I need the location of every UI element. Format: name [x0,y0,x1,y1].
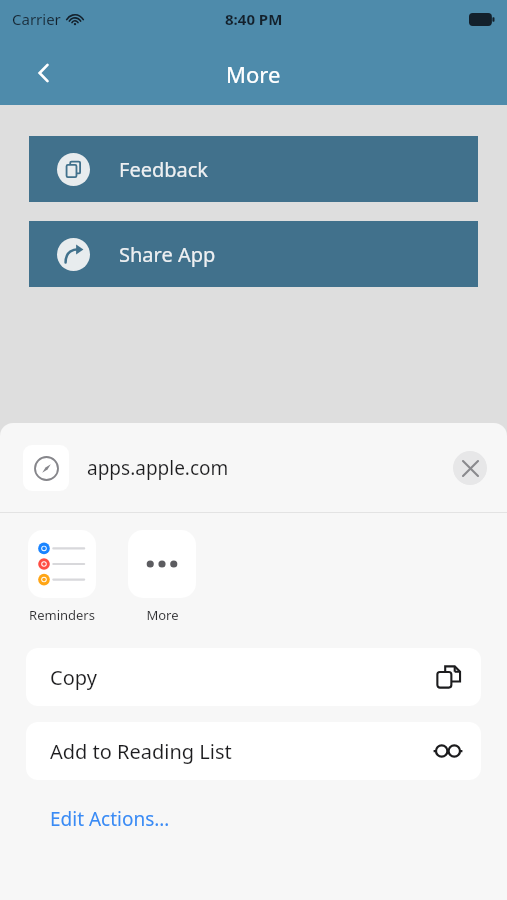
button[interactable]: Reminders [26,530,98,624]
staticText: Copy [50,664,97,691]
staticText: Feedback [119,156,209,183]
staticText: More [226,59,281,89]
staticText: Share App [119,241,216,268]
button[interactable]: More [126,530,198,624]
staticText: Carrier [12,9,61,29]
button[interactable]: Copy [26,648,481,706]
staticText: apps.apple.com [87,455,229,481]
button[interactable]: Back [22,51,66,95]
button[interactable]: Edit Actions… [0,797,507,841]
staticText: 8:40 PM [225,9,283,29]
button[interactable]: Feedback [29,136,478,202]
button[interactable]: Add to Reading List [26,722,481,780]
button[interactable]: Share App [29,221,478,287]
staticText: Add to Reading List [50,738,232,765]
staticText: Reminders [29,606,95,624]
staticText: More [146,606,179,624]
button[interactable]: Close [453,451,487,485]
staticText: Edit Actions… [50,806,170,832]
